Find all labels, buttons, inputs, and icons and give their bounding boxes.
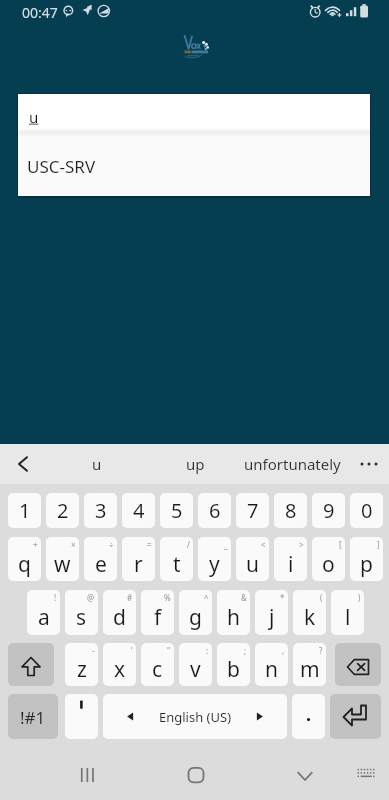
staticText: USC-SRV (27, 155, 96, 178)
staticText: !#1 (20, 706, 46, 729)
button[interactable]: u (18, 94, 370, 128)
button[interactable]: 7 (236, 493, 269, 528)
button[interactable]: Previous suggestions (0, 444, 46, 484)
staticText: 4 (133, 497, 145, 524)
staticText: [ (339, 539, 342, 550)
button[interactable]: 8 (274, 493, 307, 528)
button[interactable]: ÷ (84, 537, 117, 581)
staticText: + (33, 539, 38, 550)
staticText: / (187, 539, 190, 550)
button[interactable]: ^ (179, 590, 212, 635)
button[interactable]: 9 (312, 493, 345, 528)
button[interactable]: Space (103, 694, 287, 739)
button[interactable]: 4 (122, 493, 155, 528)
button[interactable]: ( (293, 590, 326, 635)
staticText: h (227, 603, 240, 632)
staticText: x (114, 655, 126, 684)
button[interactable]: ; (217, 643, 250, 686)
staticText: 5 (171, 497, 183, 524)
staticText: = (147, 539, 152, 550)
staticText: p (360, 550, 373, 579)
button[interactable]: Recents (52, 749, 122, 800)
button[interactable]: % (141, 590, 174, 635)
button[interactable]: Shift (8, 643, 54, 686)
button[interactable]: ’ (103, 643, 136, 686)
staticText: ^ (204, 592, 209, 603)
button[interactable]: 0 (350, 493, 383, 528)
button[interactable]: * (255, 590, 288, 635)
staticText: @ (87, 592, 95, 603)
staticText: 3 (95, 497, 107, 524)
button[interactable]: Enter (330, 694, 381, 739)
button[interactable]: Symbols (8, 694, 58, 739)
button[interactable]: , (255, 643, 288, 686)
button[interactable] (65, 694, 98, 739)
button[interactable]: + (8, 537, 41, 581)
button[interactable]: ? (293, 643, 326, 686)
staticText: English (US) (159, 708, 232, 726)
button[interactable]: @ (65, 590, 98, 635)
button[interactable]: ] (350, 537, 383, 581)
button[interactable]: : (179, 643, 212, 686)
button[interactable]: u (58, 444, 136, 484)
staticText: k (304, 603, 316, 632)
button[interactable]: 1 (8, 493, 41, 528)
staticText: c (152, 655, 163, 684)
staticText: ! (54, 592, 57, 603)
staticText: f (154, 603, 162, 632)
button[interactable]: 2 (46, 493, 79, 528)
button[interactable]: More options (349, 444, 389, 484)
staticText: > (299, 539, 304, 550)
staticText: u (92, 454, 102, 474)
staticText: 9 (323, 497, 335, 524)
button[interactable] (292, 694, 325, 739)
button[interactable]: 5 (160, 493, 193, 528)
staticText: s (76, 603, 87, 632)
staticText: i (288, 550, 294, 579)
button[interactable]: / (160, 537, 193, 581)
button[interactable]: up (156, 444, 234, 484)
button[interactable]: < (236, 537, 269, 581)
staticText: z (77, 655, 87, 684)
button[interactable]: > (274, 537, 307, 581)
staticText: 2 (57, 497, 69, 524)
button[interactable]: 6 (198, 493, 231, 528)
button[interactable]: 3 (84, 493, 117, 528)
button[interactable]: Home (161, 749, 231, 800)
button[interactable]: Back (270, 749, 340, 800)
button[interactable]: × (46, 537, 79, 581)
button[interactable]: USC-SRV (18, 137, 370, 196)
staticText: r (134, 550, 143, 579)
staticText: - (92, 645, 95, 656)
staticText: t (173, 550, 181, 579)
button[interactable]: ! (27, 590, 60, 635)
staticText: ( (320, 592, 323, 603)
staticText: m (300, 655, 320, 684)
staticText: : (206, 645, 209, 656)
button[interactable]: & (217, 590, 250, 635)
staticText: b (227, 655, 240, 684)
staticText: e (95, 550, 107, 579)
staticText: ; (244, 645, 247, 656)
button[interactable]: [ (312, 537, 345, 581)
button[interactable]: = (122, 537, 155, 581)
button[interactable]: _ (198, 537, 231, 581)
staticText: v (190, 655, 201, 684)
staticText: ÷ (109, 539, 114, 550)
button[interactable]: Backspace (335, 643, 381, 686)
staticText: ] (377, 539, 380, 550)
button[interactable]: unfortunately (242, 444, 342, 484)
staticText: # (127, 592, 133, 603)
button[interactable]: " (141, 643, 174, 686)
staticText: ? (319, 645, 323, 656)
button[interactable]: Change keyboard (348, 749, 384, 800)
staticText: × (71, 539, 76, 550)
button[interactable]: ) (331, 590, 364, 635)
staticText: d (113, 603, 126, 632)
staticText: up (186, 454, 205, 474)
staticText: " (167, 645, 171, 656)
staticText: unfortunately (244, 454, 341, 474)
button[interactable]: - (65, 643, 98, 686)
button[interactable]: # (103, 590, 136, 635)
staticText: & (241, 592, 247, 603)
